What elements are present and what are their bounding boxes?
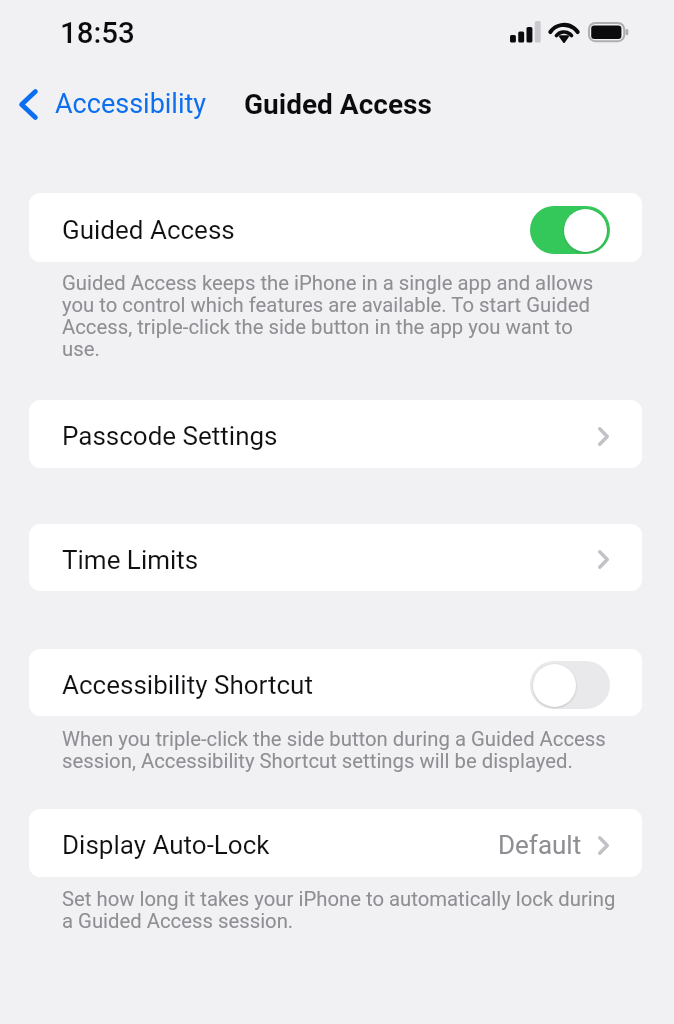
staticText: Accessibility Shortcut: [62, 670, 313, 700]
staticText: Display Auto-Lock: [62, 830, 270, 860]
staticText: Passcode Settings: [62, 421, 278, 451]
other: Battery: [588, 22, 632, 44]
other: Wi-Fi: [550, 22, 579, 44]
button[interactable]: On: [530, 206, 610, 254]
button[interactable]: Passcode Settings: [29, 400, 642, 468]
staticText: When you triple-click the side button du…: [62, 728, 606, 772]
button[interactable]: Display Auto-Lock: [29, 809, 642, 877]
staticText: Default: [498, 830, 582, 860]
button[interactable]: Guided Access: [29, 193, 642, 262]
staticText: Guided Access: [62, 215, 235, 245]
staticText: Set how long it takes your iPhone to aut…: [62, 888, 616, 932]
button[interactable]: Time Limits: [29, 524, 642, 591]
button[interactable]: Off: [530, 661, 610, 709]
button[interactable]: Accessibility Shortcut: [29, 649, 642, 716]
button[interactable]: Accessibility: [12, 84, 217, 124]
staticText: 18:53: [60, 16, 135, 51]
other: Open: [598, 836, 609, 855]
staticText: Guided Access keeps the iPhone in a sing…: [62, 272, 594, 360]
staticText: Guided Access: [244, 88, 432, 121]
other: Open: [598, 427, 609, 446]
staticText: Time Limits: [62, 545, 199, 575]
other: Open: [598, 550, 609, 569]
other: Cellular signal: [510, 21, 541, 43]
staticText: Accessibility: [55, 88, 207, 120]
